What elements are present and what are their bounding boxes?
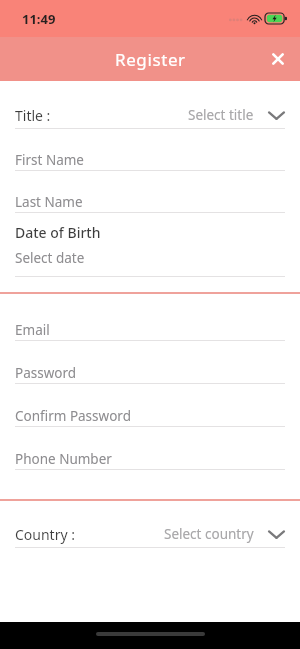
staticText: Email (15, 321, 50, 339)
button[interactable]: Email (0, 320, 300, 340)
button[interactable]: Phone Number (0, 449, 300, 469)
staticText: Title : (15, 106, 51, 125)
button[interactable]: First Name (0, 150, 300, 170)
staticText: First Name (15, 151, 84, 169)
button[interactable]: Confirm Password (0, 406, 300, 426)
button[interactable]: Select date (0, 248, 300, 268)
button[interactable]: Title : (0, 102, 300, 128)
staticText: Select title (188, 106, 254, 124)
staticText: Last Name (15, 193, 83, 211)
button[interactable]: Country : (0, 521, 300, 547)
staticText: Date of Birth (15, 223, 101, 242)
staticText: Select date (15, 249, 85, 267)
button[interactable]: Close (256, 37, 300, 81)
staticText: Country : (15, 525, 75, 544)
button[interactable]: Password (0, 363, 300, 383)
staticText: Confirm Password (15, 407, 131, 425)
staticText: Phone Number (15, 450, 112, 468)
staticText: Register (115, 48, 186, 71)
staticText: Select country (164, 525, 254, 543)
button[interactable]: Last Name (0, 192, 300, 212)
staticText: 11:49 (22, 10, 56, 28)
staticText: Password (15, 364, 77, 382)
